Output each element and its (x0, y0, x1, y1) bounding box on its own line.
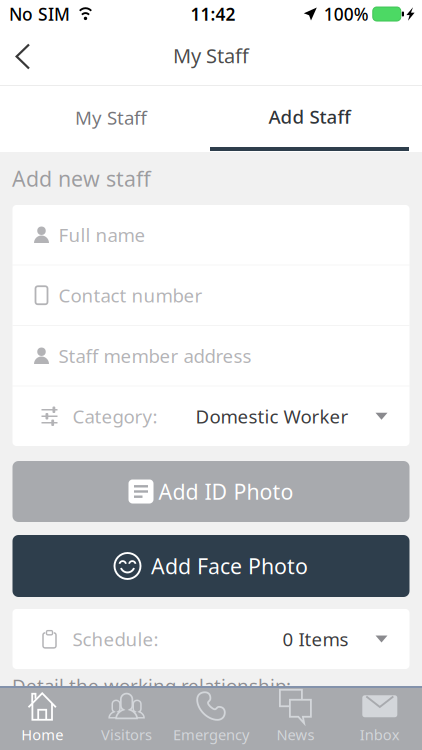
staticText: Add new staff (12, 164, 151, 193)
staticText: Category: (72, 404, 157, 429)
staticText: 11:42 (190, 2, 235, 25)
button[interactable]: Home (0, 688, 84, 750)
button[interactable]: Schedule: (12, 609, 409, 669)
button[interactable]: Visitors (84, 688, 169, 750)
button[interactable]: My Staff (12, 86, 210, 152)
button[interactable]: News (253, 688, 338, 750)
staticText: Add Face Photo (151, 552, 308, 580)
staticText: Add ID Photo (158, 477, 293, 506)
button[interactable]: Add Staff (210, 86, 409, 152)
staticText: 100% (324, 2, 369, 25)
button[interactable]: Inbox (338, 688, 422, 750)
button[interactable]: Full name (12, 205, 409, 265)
button[interactable]: Contact number (12, 265, 409, 325)
button[interactable]: Category: (12, 386, 409, 446)
button[interactable]: Staff member address (12, 326, 409, 386)
staticText: News (276, 725, 314, 744)
staticText: Schedule: (72, 627, 158, 651)
staticText: Detail the working relationship: (12, 673, 291, 698)
staticText: 0 Items (282, 627, 348, 651)
button[interactable]: Emergency (169, 688, 253, 750)
button[interactable]: Add ID Photo (12, 461, 409, 522)
staticText: Visitors (101, 725, 152, 744)
button[interactable]: Back (0, 28, 53, 85)
staticText: Contact number (58, 283, 202, 308)
staticText: Home (21, 725, 63, 744)
button[interactable]: Add Face Photo (12, 535, 409, 597)
staticText: Domestic Worker (195, 404, 348, 429)
staticText: Add Staff (268, 104, 350, 129)
staticText: Full name (58, 222, 145, 247)
staticText: Inbox (360, 725, 400, 744)
staticText: My Staff (75, 105, 147, 130)
staticText: My Staff (173, 42, 249, 69)
staticText: Staff member address (58, 343, 251, 368)
staticText: No SIM (9, 2, 70, 25)
staticText: Emergency (173, 725, 249, 744)
